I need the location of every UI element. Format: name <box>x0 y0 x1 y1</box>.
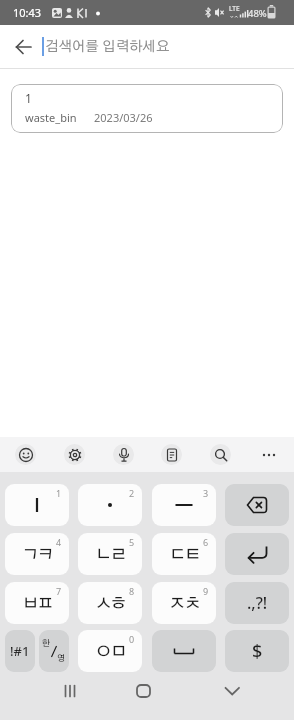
button[interactable]: ㅇㅁ <box>78 630 142 672</box>
staticText: 3 <box>203 487 209 499</box>
button[interactable]: .,?! <box>225 582 289 624</box>
button[interactable]: 검색어를 입력하세요 <box>45 40 170 54</box>
button[interactable]: ㅅㅎ <box>78 582 142 624</box>
staticText: 1 <box>25 90 32 106</box>
staticText: ㅈㅊ <box>169 595 200 612</box>
staticText: 영 <box>57 654 66 663</box>
staticText: 48% <box>248 7 267 20</box>
staticText: 6 <box>203 536 209 548</box>
button[interactable] <box>8 31 40 63</box>
button[interactable]: $ <box>225 630 289 672</box>
button[interactable]: ㄴㄹ <box>78 533 142 575</box>
button[interactable] <box>161 444 182 465</box>
button[interactable] <box>113 444 134 465</box>
button[interactable]: 1 <box>11 84 283 133</box>
button[interactable]: 1 <box>5 484 69 526</box>
staticText: ㄱㅋ <box>22 546 53 563</box>
staticText: 8 <box>129 585 135 597</box>
staticText: 한 <box>42 639 51 648</box>
button[interactable] <box>210 444 231 465</box>
button[interactable]: 2 <box>78 484 142 526</box>
button[interactable] <box>64 444 85 465</box>
button[interactable] <box>259 445 279 465</box>
button[interactable]: 3 <box>152 484 216 526</box>
staticText: ㅂㅍ <box>22 595 53 612</box>
button[interactable]: ㅂㅍ <box>5 582 69 624</box>
staticText: 2023/03/26 <box>94 110 153 125</box>
button[interactable]: !#1 <box>5 630 35 672</box>
button[interactable]: 한 <box>39 630 69 672</box>
button[interactable]: ㄷㅌ <box>152 533 216 575</box>
button[interactable] <box>225 533 289 575</box>
staticText: 5 <box>129 536 135 548</box>
staticText: ㅅㅎ <box>95 595 126 612</box>
staticText: 0 <box>129 633 135 645</box>
staticText: 10:43 <box>13 5 42 20</box>
staticText: 4 <box>56 536 62 548</box>
staticText: 2 <box>129 487 135 499</box>
staticText: 7 <box>56 585 62 597</box>
button[interactable]: ㅈㅊ <box>152 582 216 624</box>
button[interactable] <box>225 484 289 526</box>
button[interactable] <box>152 630 216 672</box>
button[interactable] <box>15 444 36 465</box>
staticText: .,?! <box>247 592 268 614</box>
staticText: !#1 <box>10 642 30 660</box>
staticText: LTE <box>229 4 240 13</box>
staticText: ㄷㅌ <box>169 546 200 563</box>
staticText: ㅇㅁ <box>95 643 126 660</box>
staticText: 9 <box>203 585 209 597</box>
staticText: 1 <box>56 487 62 499</box>
staticText: ㄴㄹ <box>95 546 126 563</box>
staticText: $ <box>252 639 263 664</box>
staticText: waste_bin <box>25 110 77 125</box>
button[interactable]: ㄱㅋ <box>5 533 69 575</box>
